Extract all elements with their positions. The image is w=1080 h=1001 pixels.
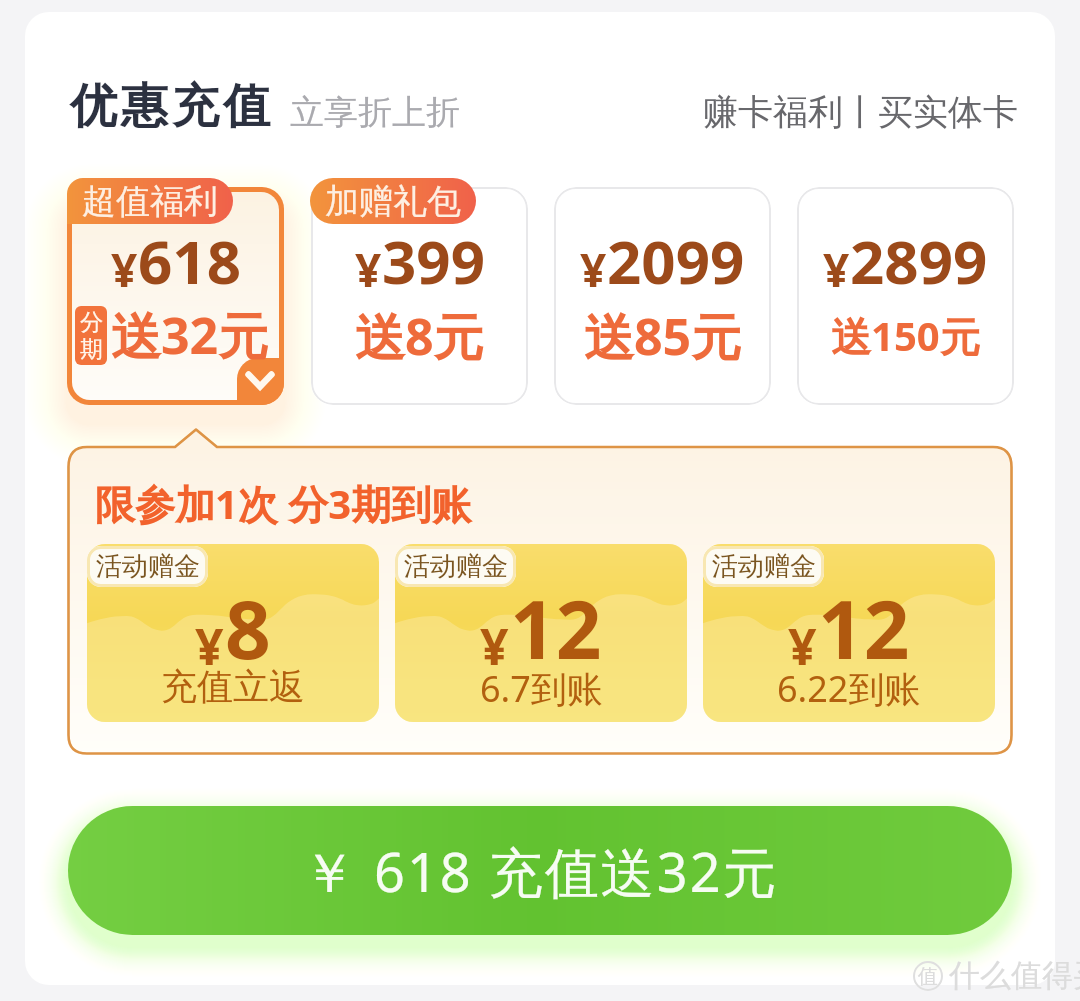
staticText: 活动赠金 — [712, 550, 816, 583]
staticText: 加赠礼包 — [325, 180, 461, 223]
button[interactable]: 赚卡福利丨买实体卡 — [703, 92, 1018, 136]
staticText: 2099 — [607, 220, 745, 302]
staticText: 8 — [225, 573, 271, 682]
staticText: 超值福利 — [82, 180, 218, 223]
staticText: 活动赠金 — [96, 550, 200, 583]
staticText: 什么值得买 — [949, 956, 1080, 995]
button[interactable]: ¥ — [311, 174, 528, 405]
staticText: ¥ — [580, 238, 607, 301]
staticText: ¥ — [355, 238, 382, 301]
staticText: ￥ 618 充值送32元 — [302, 834, 779, 908]
staticText: 限参加1次 分3期到账 — [95, 476, 472, 531]
button[interactable]: ¥ — [797, 174, 1014, 405]
other: Selected — [67, 187, 284, 405]
staticText: 活动赠金 — [404, 550, 508, 583]
staticText: 399 — [382, 220, 485, 302]
staticText: 12 — [510, 573, 602, 682]
button[interactable]: Selected — [67, 174, 284, 405]
staticText: 6.22到账 — [777, 664, 921, 713]
staticText: ¥ — [788, 612, 817, 680]
button[interactable]: ¥ — [703, 544, 995, 722]
staticText: 立享折上折 — [290, 91, 460, 134]
staticText: ¥ — [195, 612, 224, 680]
button[interactable]: ¥ — [395, 544, 687, 722]
staticText: 送32元 — [111, 301, 269, 369]
staticText: ¥ — [111, 238, 138, 301]
button[interactable]: ¥ — [554, 174, 771, 405]
staticText: 送150元 — [831, 308, 980, 363]
staticText: 值 — [918, 964, 938, 989]
staticText: 送85元 — [584, 302, 742, 370]
staticText: 分 期 — [80, 308, 103, 364]
staticText: 充值立返 — [161, 664, 305, 709]
button[interactable]: ￥ 618 充值送32元 — [68, 806, 1012, 935]
staticText: 6.7到账 — [480, 664, 603, 713]
staticText: 送8元 — [355, 302, 484, 370]
staticText: 优惠充值 — [68, 77, 272, 136]
staticText: 2899 — [850, 220, 988, 302]
staticText: ¥ — [480, 612, 509, 680]
staticText: 赚卡福利丨买实体卡 — [703, 90, 1018, 134]
staticText: 618 — [138, 220, 241, 302]
staticText: ¥ — [823, 238, 850, 301]
staticText: 12 — [818, 573, 910, 682]
button[interactable]: ¥ — [87, 544, 379, 722]
